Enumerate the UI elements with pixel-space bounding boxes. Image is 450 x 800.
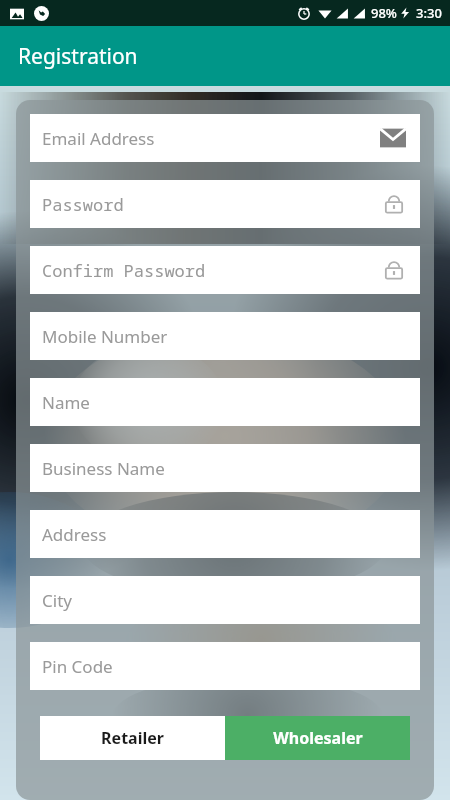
button[interactable]: Email Address xyxy=(30,114,420,162)
staticText: Confirm Password xyxy=(42,259,206,282)
staticText: Wholesaler xyxy=(273,727,363,749)
button[interactable]: City xyxy=(30,576,420,624)
staticText: Registration xyxy=(18,42,138,71)
staticText: City xyxy=(42,589,72,612)
staticText: Pin Code xyxy=(42,655,113,678)
button[interactable]: Confirm Password xyxy=(30,246,420,294)
staticText: Business Name xyxy=(42,457,165,480)
staticText: Retailer xyxy=(101,727,164,749)
button[interactable]: Pin Code xyxy=(30,642,420,690)
staticText: Name xyxy=(42,391,90,414)
staticText: 3:30 xyxy=(416,4,442,22)
staticText: Password xyxy=(42,193,124,216)
button[interactable]: Business Name xyxy=(30,444,420,492)
staticText: Address xyxy=(42,523,107,546)
staticText: Email Address xyxy=(42,127,155,150)
button[interactable]: Name xyxy=(30,378,420,426)
staticText: Mobile Number xyxy=(42,325,168,348)
button[interactable]: Address xyxy=(30,510,420,558)
button[interactable]: Password xyxy=(30,180,420,228)
button[interactable]: Retailer xyxy=(40,716,225,760)
button[interactable]: Mobile Number xyxy=(30,312,420,360)
button[interactable]: Wholesaler xyxy=(225,716,410,760)
staticText: 98% xyxy=(371,4,397,22)
